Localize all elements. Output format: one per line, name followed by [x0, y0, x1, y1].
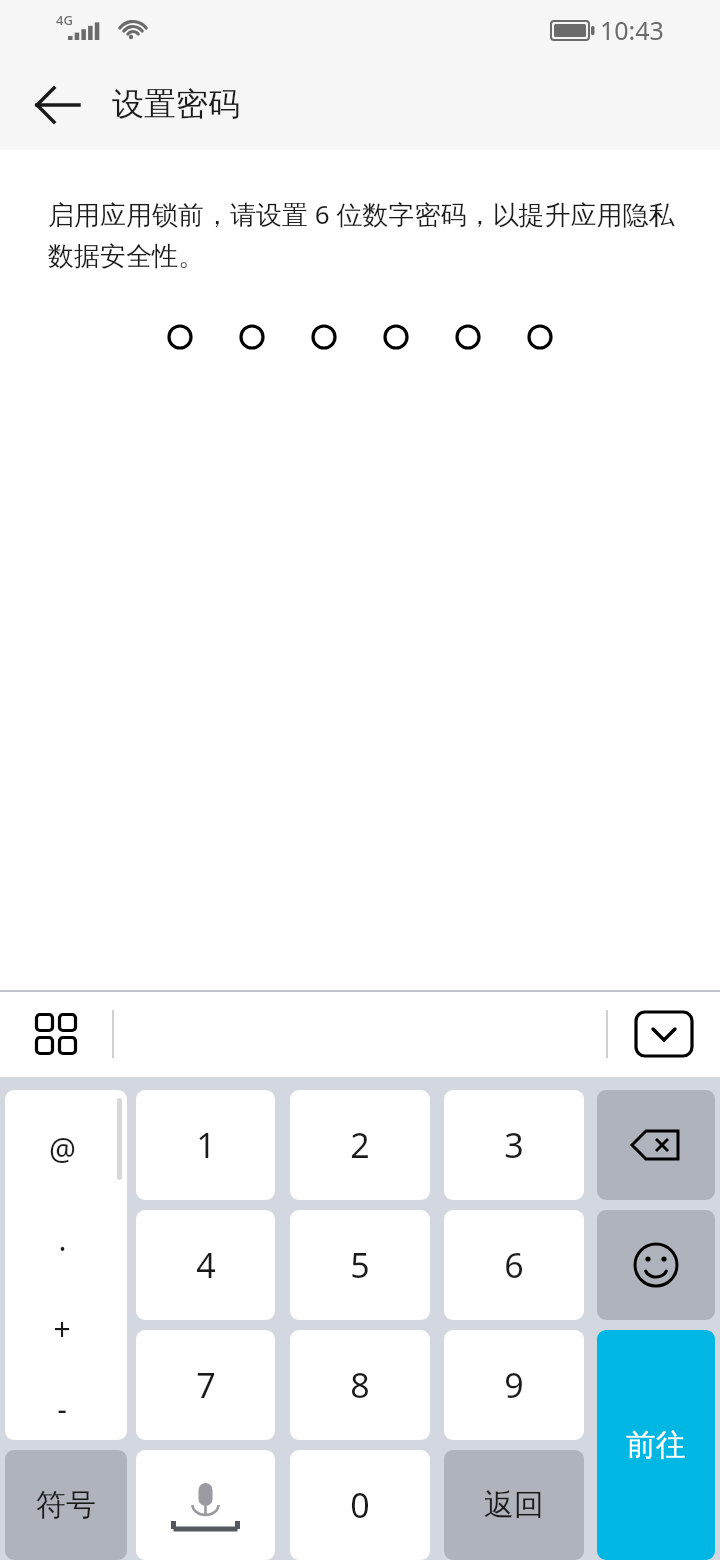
staticText: 5	[350, 1242, 370, 1288]
button[interactable]: 9	[444, 1330, 584, 1440]
button[interactable]: 4	[136, 1210, 275, 1320]
button[interactable]: 符号	[5, 1450, 127, 1560]
staticText: 前往	[626, 1426, 686, 1464]
staticText: 4	[196, 1242, 216, 1288]
button[interactable]: 2	[290, 1090, 430, 1200]
button[interactable]: Keyboard layouts	[22, 1000, 90, 1068]
button[interactable]: 返回	[444, 1450, 584, 1560]
button[interactable]: 1	[136, 1090, 275, 1200]
staticText: 2	[350, 1122, 370, 1168]
staticText: 设置密码	[112, 84, 240, 124]
button[interactable]: @	[5, 1090, 127, 1440]
button[interactable]: 3	[444, 1090, 584, 1200]
staticText: 返回	[484, 1486, 544, 1524]
staticText: 1	[196, 1122, 216, 1168]
button[interactable]: 6	[444, 1210, 584, 1320]
staticText: 4G	[56, 11, 73, 29]
staticText: ·	[58, 1228, 67, 1269]
staticText: 0	[350, 1482, 370, 1528]
staticText: 6	[504, 1242, 524, 1288]
staticText: 10:43	[600, 13, 664, 47]
button[interactable]: 0	[290, 1450, 430, 1560]
staticText: 3	[504, 1122, 524, 1168]
button[interactable]: Hide keyboard	[632, 1002, 696, 1066]
staticText: 7	[196, 1362, 216, 1408]
button[interactable]: 7	[136, 1330, 275, 1440]
staticText: -	[57, 1388, 67, 1429]
staticText: @	[49, 1128, 76, 1169]
staticText: 8	[350, 1362, 370, 1408]
button[interactable]: Emoji	[597, 1210, 715, 1320]
staticText: 9	[504, 1362, 524, 1408]
button[interactable]: 5	[290, 1210, 430, 1320]
staticText: 符号	[36, 1486, 96, 1524]
staticText: 启用应用锁前，请设置 6 位数字密码，以提升应用隐私数据安全性。	[48, 196, 678, 273]
button[interactable]: Delete	[597, 1090, 715, 1200]
button[interactable]: 8	[290, 1330, 430, 1440]
button[interactable]: 前往	[597, 1330, 715, 1560]
button[interactable]: Back	[22, 69, 94, 141]
staticText: +	[53, 1308, 71, 1349]
button[interactable]: Voice input	[136, 1450, 275, 1560]
